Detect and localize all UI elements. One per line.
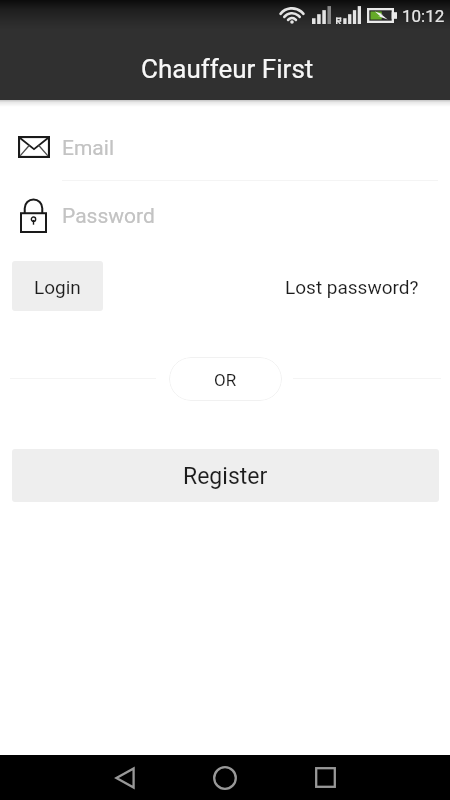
staticText: Chauffeur First bbox=[141, 54, 314, 84]
staticText: Login bbox=[34, 276, 81, 298]
button[interactable]: Recent apps bbox=[275, 755, 375, 800]
button[interactable]: Email bbox=[0, 124, 450, 174]
button[interactable]: Back bbox=[75, 755, 175, 800]
staticText: OR bbox=[214, 370, 237, 390]
staticText: Password bbox=[62, 204, 155, 229]
button[interactable]: Password bbox=[0, 192, 450, 242]
button[interactable]: Home bbox=[175, 755, 275, 800]
other: Email bbox=[18, 136, 50, 158]
button[interactable]: Register bbox=[12, 449, 439, 502]
staticText: Register bbox=[183, 463, 268, 490]
button[interactable]: Login bbox=[12, 261, 103, 311]
staticText: Lost password? bbox=[285, 276, 419, 298]
button[interactable]: OR bbox=[169, 357, 282, 401]
staticText: Email bbox=[62, 136, 114, 161]
other: Password bbox=[20, 198, 47, 233]
staticText: 10:12 bbox=[402, 6, 445, 26]
button[interactable]: Lost password? bbox=[274, 267, 429, 307]
